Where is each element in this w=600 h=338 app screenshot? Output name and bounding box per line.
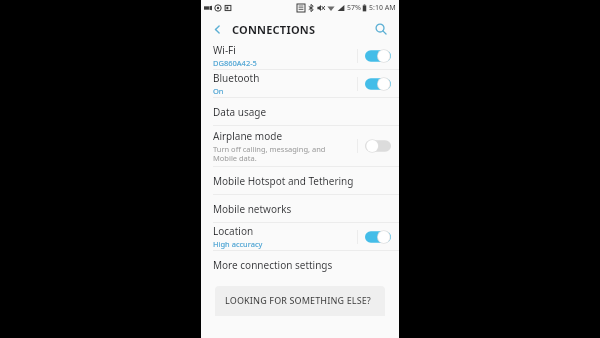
button[interactable]: Toggle off bbox=[365, 138, 391, 154]
staticText: DG860A42-5 bbox=[213, 58, 257, 68]
staticText: Location bbox=[213, 224, 254, 238]
button[interactable]: Airplane mode bbox=[201, 126, 399, 166]
button[interactable]: Back bbox=[209, 21, 225, 37]
button[interactable]: Toggle on bbox=[365, 229, 391, 245]
button[interactable]: Bluetooth bbox=[201, 70, 399, 97]
button[interactable]: Mobile networks bbox=[201, 195, 399, 222]
staticText: Data usage bbox=[213, 105, 267, 119]
button[interactable]: Toggle on bbox=[365, 48, 391, 64]
staticText: 57% bbox=[347, 3, 361, 13]
button[interactable]: LOOKING FOR SOMETHING ELSE? bbox=[215, 286, 385, 316]
staticText: Wi-Fi bbox=[213, 43, 236, 57]
staticText: On bbox=[213, 86, 224, 96]
button[interactable]: Search bbox=[372, 20, 390, 38]
button[interactable]: Location bbox=[201, 223, 399, 250]
button[interactable]: Wi-Fi bbox=[201, 42, 399, 69]
staticText: Turn off calling, messaging, and Mobile … bbox=[213, 144, 326, 163]
staticText: CONNECTIONS bbox=[232, 22, 316, 37]
staticText: 5:10 AM bbox=[369, 3, 396, 13]
staticText: More connection settings bbox=[213, 258, 333, 272]
button[interactable]: Mobile Hotspot and Tethering bbox=[201, 167, 399, 194]
staticText: Bluetooth bbox=[213, 71, 260, 85]
button[interactable]: Data usage bbox=[201, 98, 399, 125]
staticText: High accuracy bbox=[213, 239, 263, 249]
staticText: Mobile Hotspot and Tethering bbox=[213, 174, 354, 188]
button[interactable]: More connection settings bbox=[201, 251, 399, 278]
button[interactable]: Toggle on bbox=[365, 76, 391, 92]
staticText: Mobile networks bbox=[213, 202, 292, 216]
staticText: Airplane mode bbox=[213, 129, 283, 143]
staticText: LOOKING FOR SOMETHING ELSE? bbox=[225, 294, 371, 306]
